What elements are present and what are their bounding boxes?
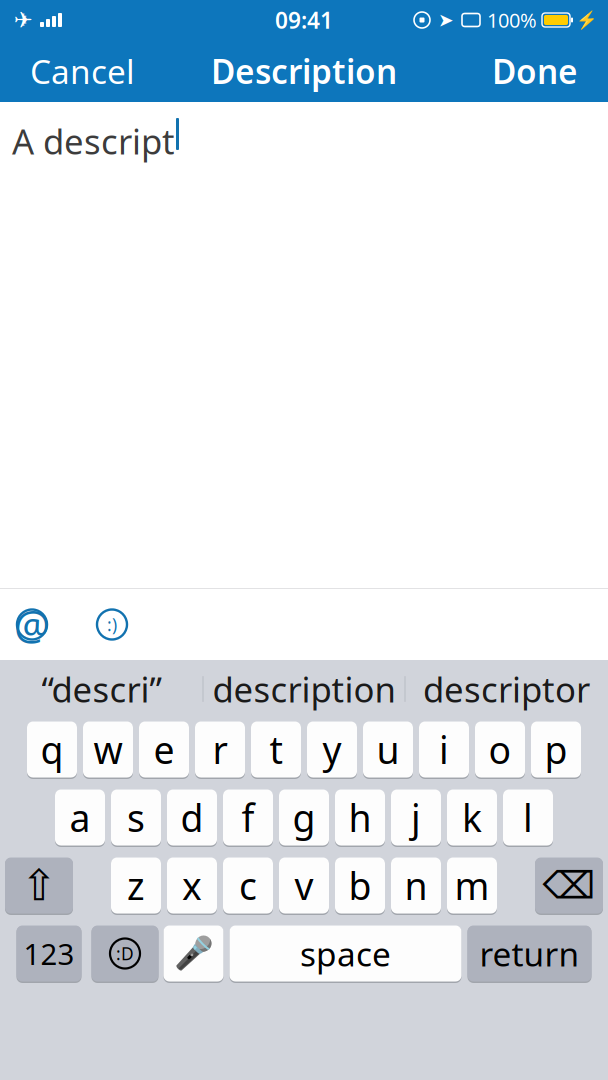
button[interactable]: q	[27, 720, 77, 779]
staticText: a	[69, 793, 90, 842]
staticText: h	[348, 793, 371, 842]
staticText: space	[300, 931, 391, 976]
button[interactable]: description	[203, 660, 404, 718]
staticText: e	[153, 725, 174, 774]
button[interactable]: a	[55, 788, 105, 847]
button[interactable]: f	[223, 788, 273, 847]
staticText: v	[294, 861, 313, 910]
button[interactable]: w	[83, 720, 133, 779]
staticText: 123	[23, 934, 74, 973]
staticText: m	[454, 861, 489, 910]
button[interactable]: Delete	[535, 856, 603, 915]
staticText: :D	[116, 942, 134, 965]
button[interactable]: n	[391, 856, 441, 915]
button[interactable]: o	[475, 720, 525, 779]
button[interactable]: Insert mention	[10, 602, 54, 646]
staticText: 09:41	[275, 5, 333, 35]
button[interactable]: Insert emoji	[90, 602, 134, 646]
staticText: Description	[211, 49, 397, 93]
button[interactable]: Done	[478, 42, 592, 100]
button[interactable]: Emoji keyboard	[91, 924, 158, 983]
button[interactable]: l	[503, 788, 553, 847]
button[interactable]: i	[419, 720, 469, 779]
button[interactable]: x	[167, 856, 217, 915]
button[interactable]: c	[223, 856, 273, 915]
staticText: t	[269, 725, 282, 774]
staticText: z	[127, 861, 145, 910]
button[interactable]: space	[229, 924, 461, 983]
staticText: A descript	[12, 118, 175, 164]
staticText: g	[292, 793, 315, 842]
staticText: q	[40, 725, 63, 774]
staticText: ➤	[438, 9, 454, 31]
staticText: j	[411, 793, 421, 842]
staticText: “descri”	[41, 666, 161, 712]
button[interactable]: y	[307, 720, 357, 779]
button[interactable]: Numbers and symbols	[16, 924, 81, 983]
staticText: r	[212, 725, 227, 774]
button[interactable]: d	[167, 788, 217, 847]
button[interactable]: b	[335, 856, 385, 915]
staticText: o	[488, 725, 511, 774]
button[interactable]: k	[447, 788, 497, 847]
staticText: Cancel	[30, 49, 135, 93]
staticText: f	[241, 793, 254, 842]
button[interactable]: h	[335, 788, 385, 847]
staticText: c	[239, 861, 257, 910]
button[interactable]: descriptor	[405, 660, 607, 718]
button[interactable]: Shift	[5, 856, 73, 915]
staticText: s	[127, 793, 145, 842]
button[interactable]: j	[391, 788, 441, 847]
button[interactable]: z	[111, 856, 161, 915]
staticText: b	[348, 861, 371, 910]
staticText: return	[479, 931, 579, 976]
staticText: descriptor	[423, 666, 590, 712]
button[interactable]: v	[279, 856, 329, 915]
staticText: ⚡	[576, 10, 598, 30]
button[interactable]: r	[195, 720, 245, 779]
button[interactable]: t	[251, 720, 301, 779]
button[interactable]: e	[139, 720, 189, 779]
button[interactable]: g	[279, 788, 329, 847]
staticText: @	[14, 598, 50, 651]
staticText: u	[376, 725, 399, 774]
staticText: 100%	[487, 7, 537, 33]
button[interactable]: u	[363, 720, 413, 779]
button[interactable]: Dictation	[163, 924, 223, 983]
staticText: :)	[107, 613, 117, 636]
staticText: Done	[492, 49, 578, 93]
button[interactable]: return	[467, 924, 591, 983]
staticText: ✈	[13, 7, 32, 33]
button[interactable]: s	[111, 788, 161, 847]
staticText: x	[182, 861, 202, 910]
staticText: w	[93, 725, 122, 774]
staticText: ⌫	[542, 864, 595, 907]
staticText: description	[212, 666, 395, 712]
button[interactable]: Cancel	[16, 42, 149, 100]
staticText: i	[439, 725, 449, 774]
staticText: l	[523, 793, 533, 842]
staticText: d	[180, 793, 203, 842]
button[interactable]: p	[531, 720, 581, 779]
staticText: n	[404, 861, 427, 910]
staticText: p	[544, 725, 567, 774]
staticText: 🎤	[173, 935, 213, 972]
button[interactable]: “descri”	[0, 660, 202, 718]
button[interactable]: m	[447, 856, 497, 915]
staticText: y	[322, 725, 341, 774]
staticText: ⇧	[21, 861, 57, 910]
staticText: k	[462, 793, 482, 842]
